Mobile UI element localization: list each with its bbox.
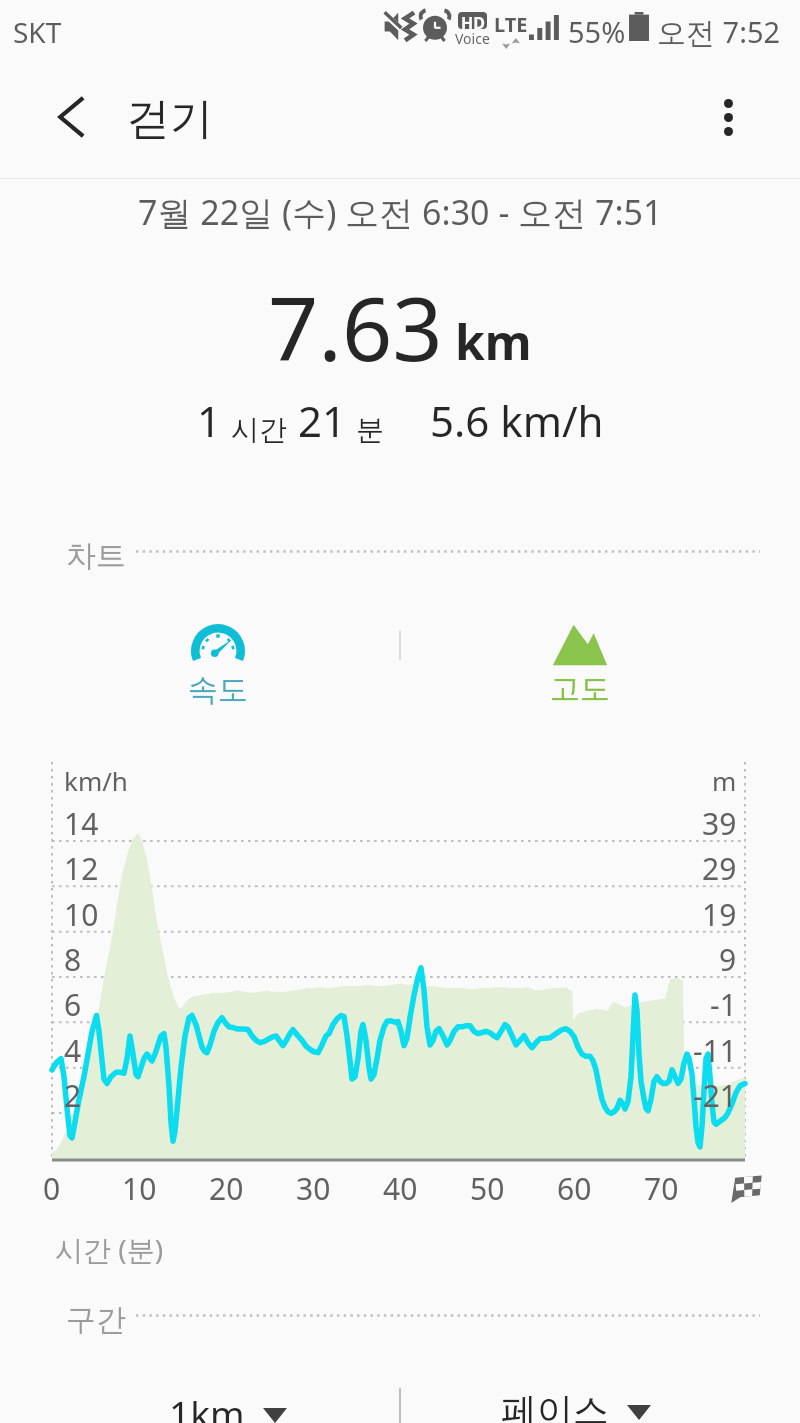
staticText: 페이스 [501,1388,609,1423]
staticText: 70 [644,1168,679,1209]
staticText: 오전 7:52 [657,12,781,52]
staticText: 9 [719,939,737,980]
staticText: 차트 [66,537,126,575]
staticText: 10 [64,894,99,935]
staticText: 60 [557,1168,592,1209]
staticText: 0 [43,1168,61,1209]
button[interactable]: 속도 [168,624,268,709]
staticText: 21 [298,392,347,449]
staticText: -21 [693,1075,737,1116]
staticText: 1km [169,1388,245,1423]
staticText: 5.6 km/h [430,392,604,449]
staticText: SKT [13,13,62,51]
staticText: 50 [470,1168,505,1209]
staticText: 30 [296,1168,331,1209]
staticText: 7월 22일 (수) 오전 6:30 - 오전 7:51 [138,189,663,235]
staticText: LTE [494,11,528,38]
staticText: -1 [710,984,737,1025]
staticText: 6 [64,984,82,1025]
staticText: 19 [702,894,737,935]
button[interactable]: 1km [165,1384,291,1423]
staticText: -11 [693,1030,737,1071]
staticText: 2 [64,1075,82,1116]
staticText: 4 [64,1030,82,1071]
staticText: Voice [455,29,490,48]
staticText: 구간 [66,1301,126,1339]
button[interactable]: 페이스 [497,1384,655,1423]
staticText: 20 [209,1168,244,1209]
staticText: 분 [356,412,384,447]
staticText: 1 [197,392,222,449]
button[interactable]: More options [693,82,763,152]
staticText: 29 [702,848,737,889]
staticText: 시간 [231,412,287,447]
staticText: km [455,309,532,374]
staticText: 시간 (분) [55,1230,164,1268]
staticText: HD [461,12,485,29]
button[interactable]: 고도 [530,624,630,708]
staticText: 12 [64,848,99,889]
staticText: 7.63 [268,267,443,387]
staticText: 속도 [188,671,248,709]
staticText: 10 [122,1168,157,1209]
staticText: 걷기 [127,92,213,146]
staticText: 55% [568,12,626,51]
staticText: 14 [64,803,99,844]
staticText: 39 [702,803,737,844]
staticText: 고도 [550,670,610,708]
staticText: km/h [64,763,128,798]
button[interactable]: Back [34,82,104,152]
staticText: 40 [383,1168,418,1209]
staticText: m [712,763,737,798]
staticText: 8 [64,939,82,980]
